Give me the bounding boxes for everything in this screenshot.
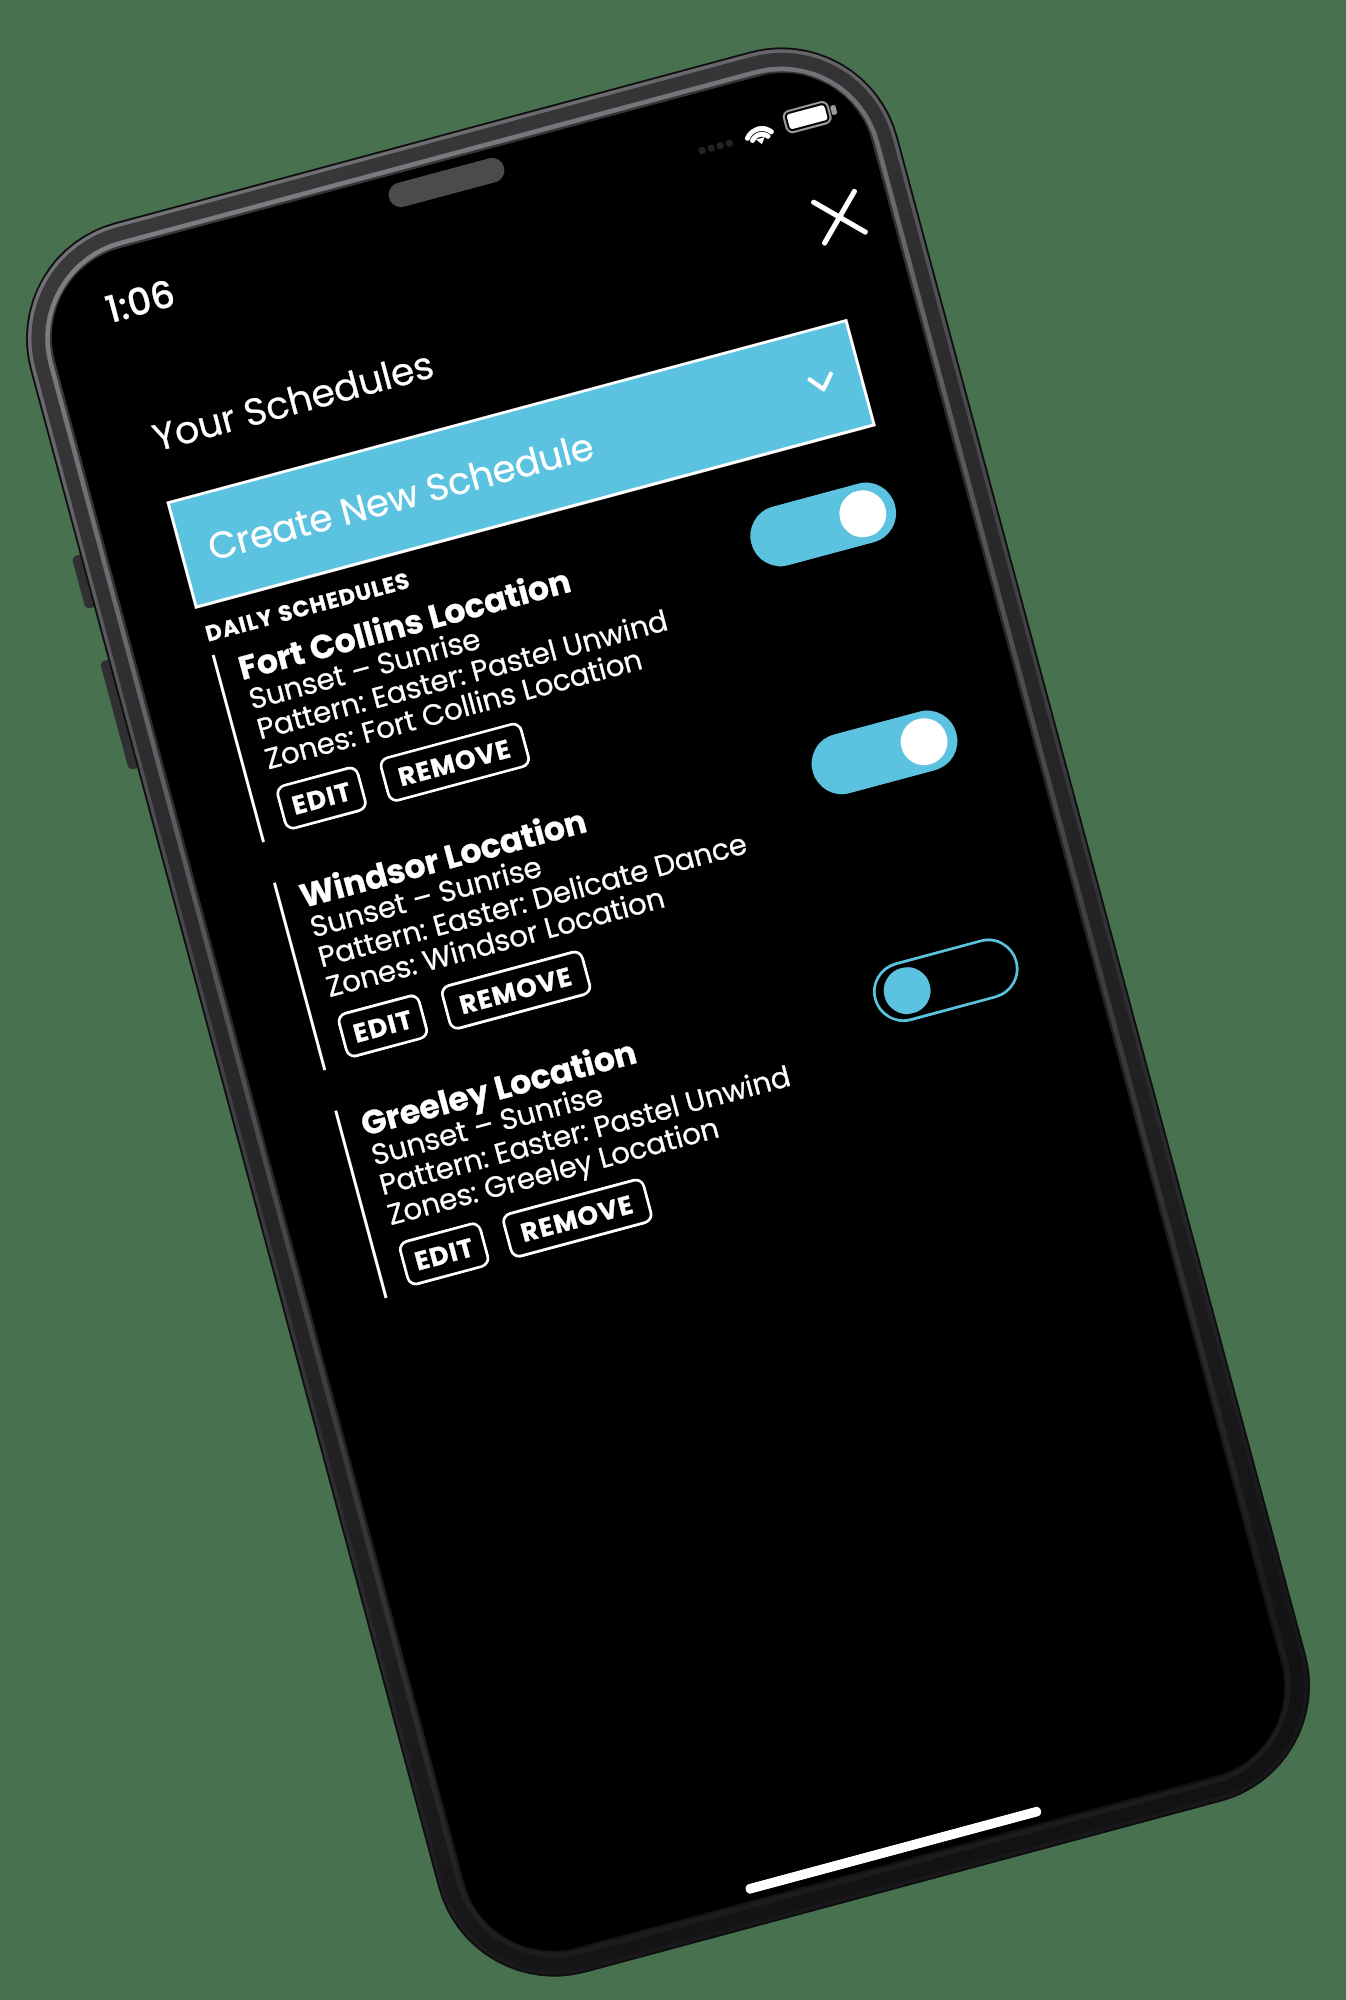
button[interactable]: REMOVE: [439, 948, 594, 1032]
staticText: 1:06: [100, 267, 181, 336]
staticText: REMOVE: [517, 1186, 638, 1251]
staticText: Sunset – Sunrise: [306, 846, 547, 948]
staticText: Pattern: Easter: Pastel Unwind: [375, 1056, 795, 1206]
button[interactable]: EDIT: [396, 1220, 492, 1288]
button[interactable]: REMOVE: [500, 1176, 655, 1260]
staticText: Pattern: Easter: Pastel Unwind: [252, 600, 673, 750]
button[interactable]: EDIT: [335, 992, 430, 1060]
staticText: Sunset – Sunrise: [244, 618, 486, 720]
button[interactable]: Close: [793, 171, 886, 264]
staticText: EDIT: [349, 1001, 418, 1052]
staticText: EDIT: [411, 1229, 479, 1280]
staticText: REMOVE: [456, 958, 577, 1023]
staticText: Zones: Windsor Location: [322, 878, 669, 1008]
staticText: EDIT: [288, 773, 356, 824]
button[interactable]: REMOVE: [377, 720, 532, 804]
staticText: DAILY SCHEDULES: [202, 565, 414, 649]
button[interactable]: Create New Schedule: [170, 322, 872, 605]
button[interactable]: [805, 704, 964, 801]
staticText: Zones: Greeley Location: [383, 1107, 724, 1236]
staticText: Windsor Location: [294, 797, 592, 919]
staticText: Pattern: Easter: Delicate Dance: [314, 823, 752, 978]
button[interactable]: EDIT: [274, 764, 369, 832]
staticText: Greeley Location: [356, 1028, 642, 1147]
button[interactable]: [866, 931, 1026, 1029]
staticText: Create New Schedule: [202, 420, 600, 573]
staticText: REMOVE: [394, 730, 516, 795]
button[interactable]: [743, 476, 903, 573]
staticText: Sunset – Sunrise: [367, 1074, 608, 1176]
staticText: Your Schedules: [146, 338, 439, 464]
staticText: Zones: Fort Collins Location: [260, 639, 648, 780]
staticText: Fort Collins Location: [233, 557, 576, 691]
